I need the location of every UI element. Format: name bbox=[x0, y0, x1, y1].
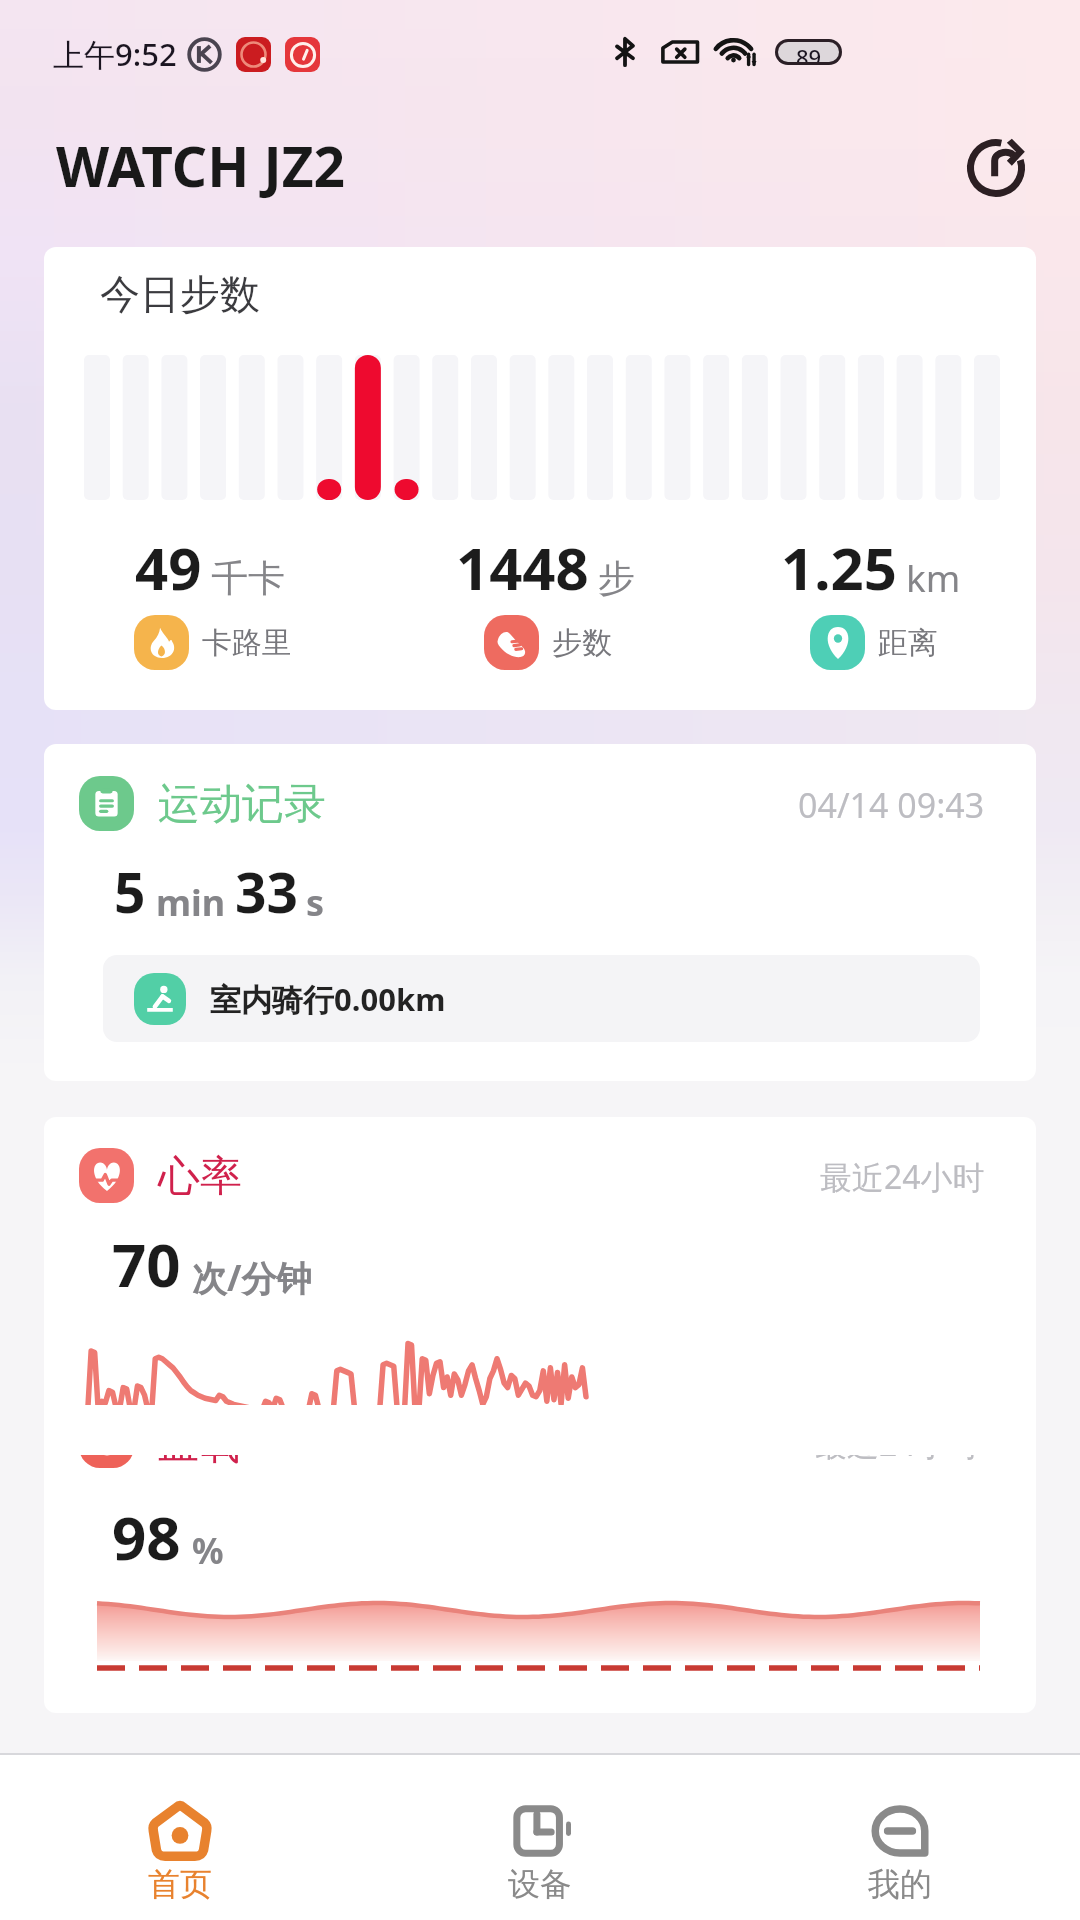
button[interactable]: 室内骑行0.00km bbox=[103, 955, 980, 1042]
staticText: 上午9:52 bbox=[53, 33, 177, 75]
staticText: 89 bbox=[796, 42, 822, 62]
staticText: 心率 bbox=[158, 1150, 242, 1203]
staticText: 70 bbox=[112, 1223, 181, 1305]
staticText: 98 bbox=[112, 1496, 181, 1578]
staticText: 次/分钟 bbox=[192, 1254, 312, 1302]
staticText: 今日步数 bbox=[100, 269, 260, 319]
staticText: 距离 bbox=[878, 624, 938, 662]
staticText: 最近24小时 bbox=[820, 1155, 985, 1199]
staticText: WATCH JZ2 bbox=[56, 128, 346, 203]
staticText: 我的 bbox=[868, 1864, 932, 1904]
staticText: 33 bbox=[235, 854, 298, 929]
staticText: % bbox=[192, 1527, 224, 1575]
staticText: 步 bbox=[598, 555, 635, 602]
button[interactable]: 运动记录 bbox=[44, 744, 1036, 1081]
button[interactable]: 设备 bbox=[360, 1755, 720, 1920]
staticText: s bbox=[306, 878, 325, 927]
staticText: 千卡 bbox=[211, 555, 285, 602]
staticText: min bbox=[156, 878, 226, 927]
staticText: 首页 bbox=[148, 1864, 212, 1904]
staticText: 最近24小时 bbox=[815, 1422, 980, 1466]
staticText: 运动记录 bbox=[158, 778, 326, 831]
staticText: 步数 bbox=[552, 624, 612, 662]
staticText: 卡路里 bbox=[202, 624, 292, 662]
staticText: 设备 bbox=[508, 1864, 572, 1904]
staticText: km bbox=[906, 552, 961, 602]
button[interactable]: 首页 bbox=[0, 1755, 360, 1920]
button[interactable]: Refresh bbox=[948, 120, 1044, 216]
staticText: 1448 bbox=[456, 528, 589, 607]
staticText: 1.25 bbox=[781, 528, 897, 607]
staticText: 血氧 bbox=[158, 1419, 240, 1471]
staticText: 5 bbox=[114, 854, 146, 929]
button[interactable]: 我的 bbox=[720, 1755, 1080, 1920]
button[interactable]: 今日步数 bbox=[44, 247, 1036, 710]
staticText: 室内骑行0.00km bbox=[210, 978, 446, 1020]
staticText: 04/14 09:43 bbox=[798, 782, 985, 828]
button[interactable]: 心率 bbox=[44, 1117, 1036, 1713]
staticText: 49 bbox=[135, 528, 202, 607]
